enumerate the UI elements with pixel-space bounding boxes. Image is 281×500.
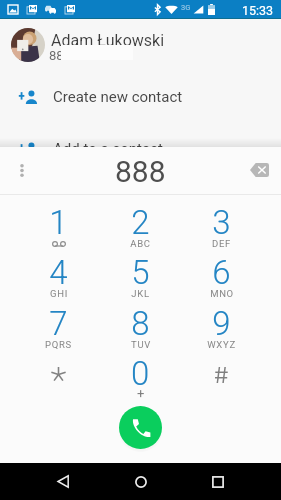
staticText: 888 — [115, 154, 166, 189]
staticText: PQRS — [45, 339, 72, 350]
button[interactable]: 0 — [100, 345, 181, 395]
staticText: 3 — [212, 203, 231, 242]
button[interactable]: 4 — [18, 244, 99, 294]
staticText: 1 — [49, 203, 68, 242]
button[interactable]: Recents — [198, 463, 238, 500]
button[interactable]: 2 — [100, 194, 181, 244]
staticText: 5 — [131, 253, 150, 292]
button[interactable]: 1 — [18, 194, 99, 244]
button[interactable] — [181, 345, 262, 395]
button[interactable]: More options — [0, 147, 44, 195]
button[interactable]: 5 — [100, 244, 181, 294]
button[interactable] — [18, 345, 99, 395]
staticText: 88888888888 — [49, 48, 130, 63]
staticText: 9 — [212, 304, 231, 343]
staticText: GHI — [50, 288, 68, 299]
button[interactable]: 8 — [100, 295, 181, 345]
staticText: Add to a contact — [53, 140, 163, 158]
staticText: 2 — [131, 203, 150, 242]
staticText: 0 — [131, 354, 150, 393]
staticText: 4 — [49, 253, 68, 292]
button[interactable]: 7 — [18, 295, 99, 345]
button[interactable]: Adam Łukowski — [0, 20, 281, 70]
staticText: Adam Łukowski — [51, 31, 165, 50]
staticText: 6 — [212, 253, 231, 292]
button[interactable]: Add to a contact — [0, 129, 281, 169]
staticText: DEF — [212, 238, 231, 249]
button[interactable]: Back — [43, 463, 83, 500]
button[interactable]: 6 — [181, 244, 262, 294]
button[interactable]: 9 — [181, 295, 262, 345]
staticText: MNO — [210, 288, 234, 299]
button[interactable]: Create new contact — [0, 77, 281, 117]
staticText: + — [137, 386, 145, 401]
staticText: Create new contact — [53, 88, 183, 106]
staticText: 15:33 — [242, 3, 274, 18]
staticText: 3G — [181, 3, 191, 12]
staticText: TUV — [131, 339, 151, 350]
button[interactable]: 3 — [181, 194, 262, 244]
staticText: WXYZ — [207, 339, 236, 350]
staticText: 8 — [131, 304, 150, 343]
button[interactable]: Home — [121, 463, 161, 500]
button[interactable]: Backspace — [237, 147, 281, 195]
staticText: 7 — [49, 304, 68, 343]
staticText: JKL — [131, 288, 150, 299]
staticText: ABC — [130, 238, 151, 249]
button[interactable]: Call — [119, 406, 162, 449]
